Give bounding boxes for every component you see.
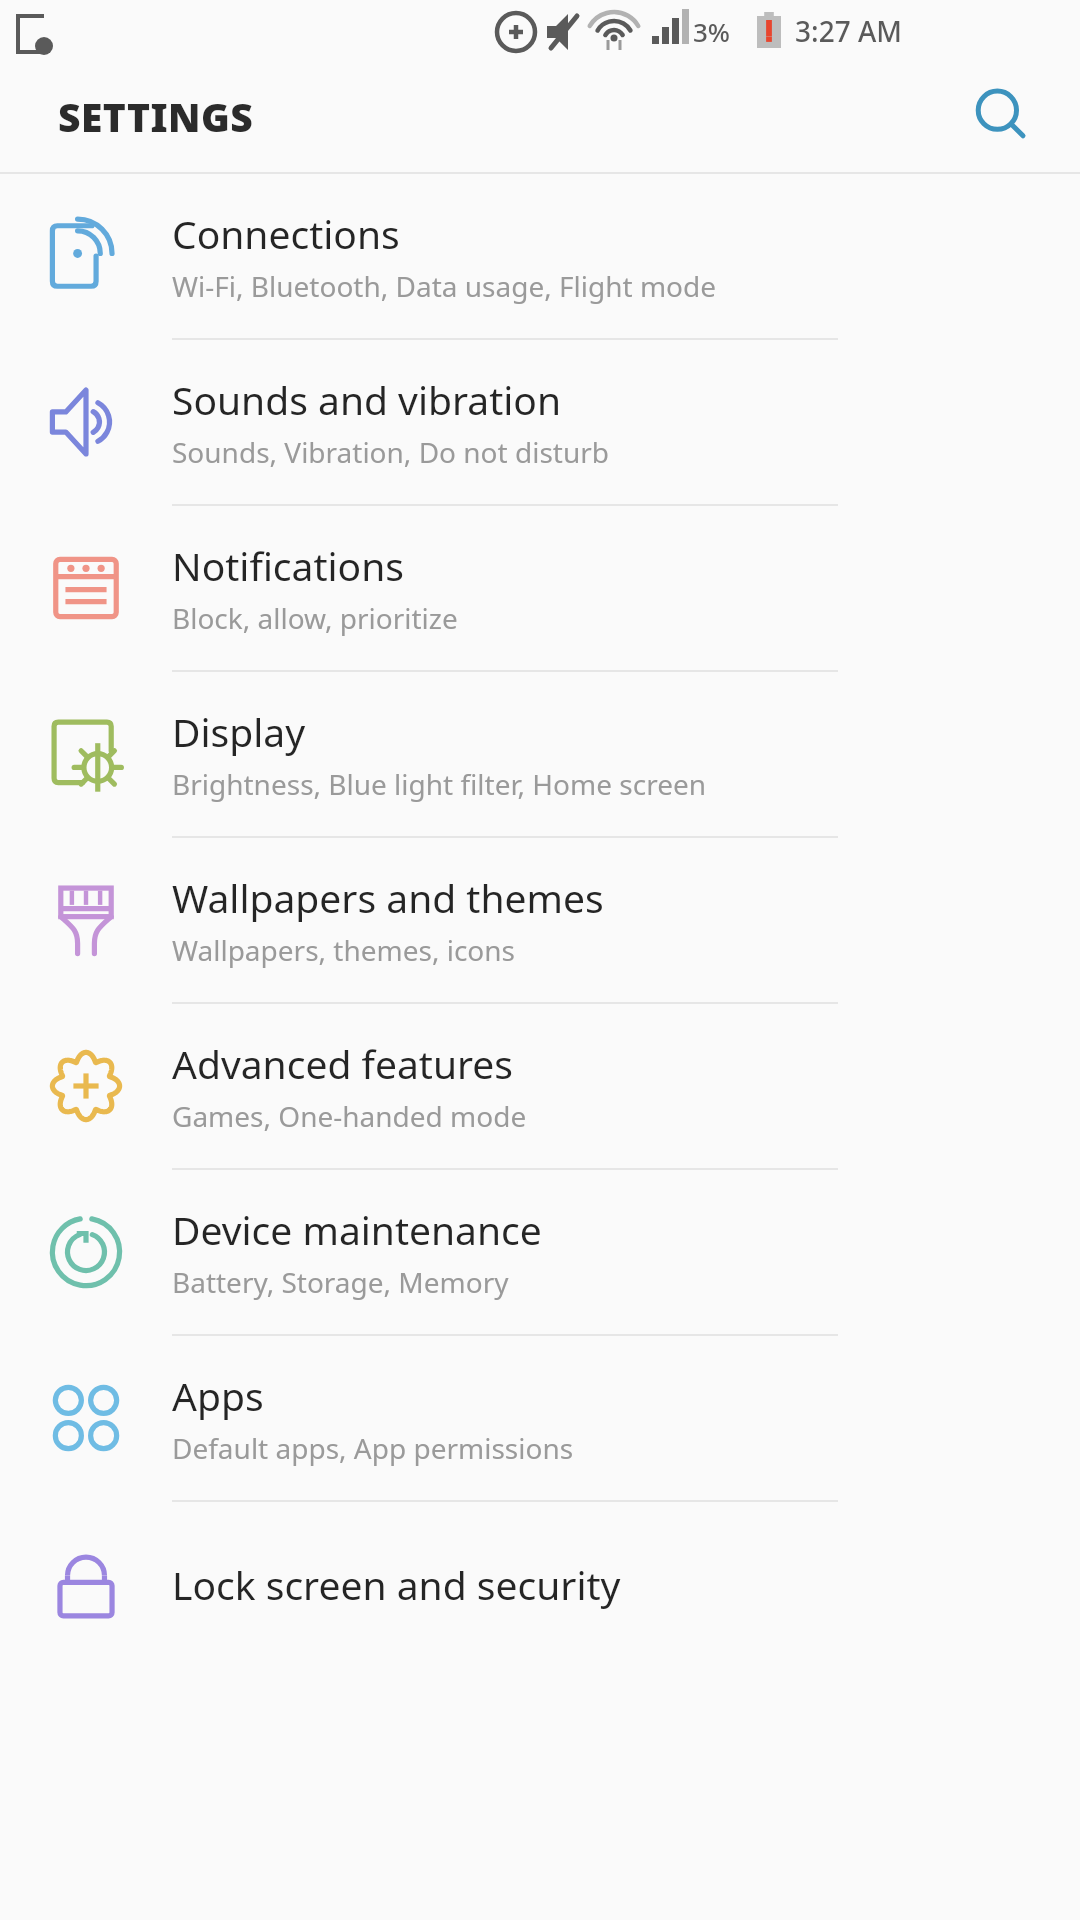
staticText: 3:27 AM — [795, 12, 902, 50]
staticText: Device maintenance — [172, 1203, 542, 1256]
button[interactable]: Notifications — [0, 506, 1080, 670]
button[interactable]: Lock screen and security — [0, 1502, 1080, 1666]
staticText: Default apps, App permissions — [172, 1429, 574, 1467]
button[interactable]: Connections — [0, 174, 1080, 338]
staticText: 3% — [693, 14, 731, 49]
staticText: Games, One-handed mode — [172, 1097, 527, 1135]
staticText: Notifications — [172, 539, 404, 592]
button[interactable]: Display — [0, 672, 1080, 836]
button[interactable]: Search — [956, 70, 1048, 162]
staticText: Apps — [172, 1369, 264, 1422]
staticText: Brightness, Blue light filter, Home scre… — [172, 765, 707, 803]
button[interactable]: Sounds and vibration — [0, 340, 1080, 504]
staticText: SETTINGS — [58, 90, 254, 143]
button[interactable]: Wallpapers and themes — [0, 838, 1080, 1002]
staticText: Lock screen and security — [172, 1558, 621, 1611]
staticText: Advanced features — [172, 1037, 514, 1090]
staticText: Display — [172, 705, 306, 758]
button[interactable]: Apps — [0, 1336, 1080, 1500]
staticText: Sounds and vibration — [172, 373, 562, 426]
staticText: Wi-Fi, Bluetooth, Data usage, Flight mod… — [172, 267, 717, 305]
staticText: Battery, Storage, Memory — [172, 1263, 509, 1301]
staticText: Block, allow, prioritize — [172, 599, 458, 637]
button[interactable]: Device maintenance — [0, 1170, 1080, 1334]
staticText: Wallpapers, themes, icons — [172, 931, 516, 969]
button[interactable]: Advanced features — [0, 1004, 1080, 1168]
staticText: Sounds, Vibration, Do not disturb — [172, 433, 609, 471]
staticText: Wallpapers and themes — [172, 871, 604, 924]
staticText: Connections — [172, 207, 400, 260]
